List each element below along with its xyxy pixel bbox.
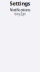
staticText: Settings	[9, 0, 30, 7]
staticText: Notifications	[9, 7, 30, 12]
staticText: tiny 2pt	[14, 12, 25, 16]
